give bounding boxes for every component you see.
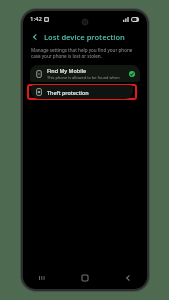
staticText: Find My Mobile	[47, 67, 87, 74]
button[interactable]: Recents	[33, 269, 51, 287]
staticText: case your phone is lost or stolen.	[31, 53, 102, 59]
button[interactable]: Find My Mobile	[30, 65, 140, 82]
button[interactable]: Home	[76, 269, 94, 287]
staticText: 1:42	[30, 15, 42, 23]
button[interactable]: Theft protection	[31, 85, 133, 99]
staticText: Lost device protection	[44, 32, 125, 42]
staticText: This phone is allowed to be found when l…	[47, 75, 126, 80]
button[interactable]: Back	[119, 269, 137, 287]
button[interactable]: Back	[29, 31, 41, 43]
staticText: Theft protection	[47, 89, 89, 96]
staticText: Manage settings that help you find your …	[31, 47, 139, 53]
